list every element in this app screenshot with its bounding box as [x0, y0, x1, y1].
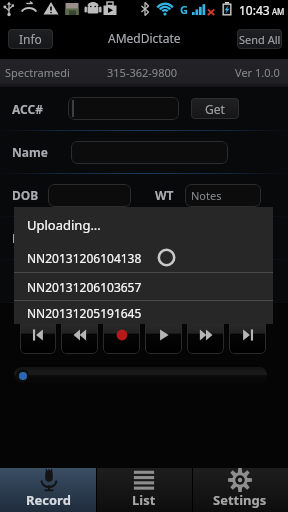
- staticText: NN20131205191645: [27, 305, 142, 321]
- button[interactable]: Rewind: [61, 318, 98, 354]
- staticText: ACC#: [12, 101, 43, 117]
- button[interactable]: Info: [8, 29, 53, 49]
- staticText: Uploading...: [27, 216, 101, 234]
- button[interactable]: [48, 184, 131, 207]
- staticText: Settings: [213, 491, 267, 509]
- staticText: Notes: [191, 188, 222, 203]
- button[interactable]: Record: [0, 468, 96, 512]
- staticText: Name: [12, 144, 48, 160]
- button[interactable]: Skip to end: [229, 318, 266, 354]
- staticText: Ref: [12, 230, 32, 246]
- button[interactable]: Settings: [192, 468, 288, 512]
- staticText: Spectramedi: [5, 65, 70, 80]
- staticText: List: [132, 491, 156, 509]
- button[interactable]: Fast forward: [187, 318, 224, 354]
- button[interactable]: Get: [191, 98, 239, 119]
- staticText: Ver 1.0.0: [235, 65, 280, 80]
- staticText: 315-362-9800: [107, 65, 178, 80]
- staticText: NN20131206103657: [27, 279, 142, 295]
- button[interactable]: Skip to start: [20, 318, 56, 354]
- button[interactable]: [14, 269, 109, 293]
- button[interactable]: Notes: [185, 184, 261, 207]
- button[interactable]: List: [96, 468, 192, 512]
- button[interactable]: [14, 367, 267, 383]
- button[interactable]: [71, 141, 228, 164]
- button[interactable]: Play: [145, 318, 182, 354]
- staticText: WT: [155, 187, 174, 203]
- button[interactable]: NN20131206104138: [14, 243, 273, 272]
- button[interactable]: [44, 227, 217, 250]
- staticText: AM: [272, 6, 285, 17]
- staticText: Info: [19, 31, 42, 47]
- staticText: DOB: [12, 187, 39, 203]
- staticText: NN20131206104138: [27, 250, 142, 266]
- button[interactable]: NN20131206103657: [14, 273, 273, 300]
- staticText: Record: [26, 491, 71, 509]
- button[interactable]: NN20131205191645: [14, 301, 273, 324]
- staticText: Send All: [239, 32, 281, 47]
- button[interactable]: Record: [103, 318, 140, 354]
- button[interactable]: [121, 269, 216, 293]
- staticText: G: [180, 2, 188, 17]
- staticText: 10:43: [239, 2, 270, 18]
- button[interactable]: Send All: [237, 29, 282, 49]
- staticText: Get: [205, 101, 225, 117]
- staticText: AMedDictate: [108, 30, 181, 46]
- button[interactable]: [68, 97, 179, 120]
